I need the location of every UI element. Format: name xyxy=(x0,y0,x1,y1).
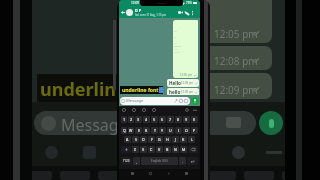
staticText: 12:09 pm xyxy=(214,83,258,97)
staticText: 12:08 pm xyxy=(214,54,258,68)
staticText: D xyxy=(142,137,145,142)
button[interactable]: Hello xyxy=(167,79,199,87)
button[interactable]: Shift xyxy=(121,146,131,153)
button[interactable]: B xyxy=(164,146,171,153)
button[interactable]: 1 xyxy=(121,116,127,123)
button[interactable]: M xyxy=(180,146,187,153)
staticText: I xyxy=(178,128,180,133)
button[interactable]: S xyxy=(132,136,139,143)
button[interactable]: 2 xyxy=(128,116,134,123)
button[interactable]: H xyxy=(164,136,171,143)
button[interactable]: Voice call xyxy=(184,8,190,17)
button[interactable]: V xyxy=(156,146,163,153)
staticText: Hello xyxy=(169,80,181,86)
button[interactable]: Q xyxy=(121,127,127,134)
button[interactable]: Keyboard tool xyxy=(122,108,126,112)
staticText: 12:05 pm xyxy=(180,73,193,77)
button[interactable]: , xyxy=(133,157,140,165)
button[interactable]: More options xyxy=(190,8,195,17)
button[interactable]: Space xyxy=(141,157,178,165)
button[interactable]: Recents xyxy=(182,169,191,177)
staticText: Z xyxy=(134,147,137,152)
staticText: Message xyxy=(126,98,144,104)
button[interactable]: Home xyxy=(146,169,155,177)
button[interactable]: Record voice message xyxy=(191,97,199,105)
button[interactable]: 6 xyxy=(159,116,166,123)
staticText: Message xyxy=(61,114,128,136)
button[interactable]: 7 xyxy=(167,116,174,123)
button[interactable]: Profile photo xyxy=(126,9,133,16)
button[interactable]: 5 xyxy=(151,116,158,123)
staticText: E xyxy=(138,128,140,133)
button[interactable]: 8 xyxy=(175,116,182,123)
staticText: 3 xyxy=(137,117,140,122)
staticText: 1 xyxy=(123,117,126,122)
staticText: T xyxy=(154,128,156,133)
button[interactable]: P xyxy=(191,127,198,134)
staticText: 5 xyxy=(153,117,156,122)
button[interactable]: Keyboard switcher xyxy=(128,169,137,177)
staticText: P xyxy=(193,128,196,133)
button[interactable]: W xyxy=(128,127,134,134)
button[interactable]: Back xyxy=(120,8,126,17)
button[interactable]: 9 xyxy=(183,116,190,123)
staticText: C xyxy=(150,147,153,152)
staticText: . xyxy=(182,159,183,164)
staticText: U xyxy=(169,128,172,133)
button[interactable]: hello xyxy=(167,88,199,96)
button[interactable]: Settings xyxy=(185,108,189,112)
button[interactable]: L xyxy=(188,136,195,143)
button[interactable]: Collapse keyboard xyxy=(193,108,197,112)
button[interactable]: F xyxy=(148,136,155,143)
staticText: N xyxy=(174,147,177,152)
staticText: 75% xyxy=(186,1,192,5)
staticText: 7 xyxy=(169,117,172,122)
staticText: O xyxy=(185,128,188,133)
button[interactable]: E xyxy=(135,127,142,134)
button[interactable]: 0 xyxy=(191,116,198,123)
staticText: D P xyxy=(135,8,142,13)
button[interactable]: Back xyxy=(164,169,173,177)
button[interactable]: R xyxy=(143,127,150,134)
button[interactable]: C xyxy=(148,146,155,153)
button[interactable]: 12:05 pm xyxy=(173,20,198,78)
button[interactable]: K xyxy=(180,136,187,143)
button[interactable]: J xyxy=(172,136,179,143)
button[interactable]: Keyboard tool xyxy=(152,108,156,112)
button[interactable]: Keyboard tool xyxy=(142,108,146,112)
button[interactable]: 3 xyxy=(135,116,142,123)
staticText: L xyxy=(191,137,193,142)
staticText: 8 xyxy=(177,117,180,122)
staticText: J xyxy=(175,137,176,142)
button[interactable]: ?123 xyxy=(121,157,132,165)
button[interactable]: A xyxy=(124,136,131,143)
button[interactable]: I xyxy=(175,127,182,134)
staticText: 9 xyxy=(185,117,188,122)
button[interactable]: Z xyxy=(132,146,139,153)
button[interactable]: Enter xyxy=(187,157,198,165)
button[interactable]: G xyxy=(156,136,163,143)
button[interactable]: O xyxy=(183,127,190,134)
button[interactable]: N xyxy=(172,146,179,153)
staticText: 12:09 xyxy=(131,1,140,5)
button[interactable]: 4 xyxy=(143,116,150,123)
staticText: R xyxy=(145,128,148,133)
staticText: 0 xyxy=(193,117,196,122)
staticText: M xyxy=(182,147,186,152)
button[interactable]: Backspace xyxy=(188,146,198,153)
button[interactable]: T xyxy=(151,127,158,134)
staticText: 2 xyxy=(130,117,133,122)
button[interactable]: Keyboard tool xyxy=(132,108,136,112)
button[interactable]: D xyxy=(140,136,147,143)
button[interactable]: Video call xyxy=(177,8,184,17)
button[interactable]: U xyxy=(167,127,174,134)
staticText: English (US) xyxy=(151,159,168,163)
button[interactable]: . xyxy=(179,157,186,165)
button[interactable]: X xyxy=(140,146,147,153)
staticText: hello xyxy=(169,89,181,95)
staticText: underline font xyxy=(122,87,159,94)
staticText: 12:08 pm xyxy=(181,81,194,85)
staticText: Y xyxy=(161,128,164,133)
button[interactable]: Y xyxy=(159,127,166,134)
button[interactable]: Message xyxy=(120,97,190,105)
